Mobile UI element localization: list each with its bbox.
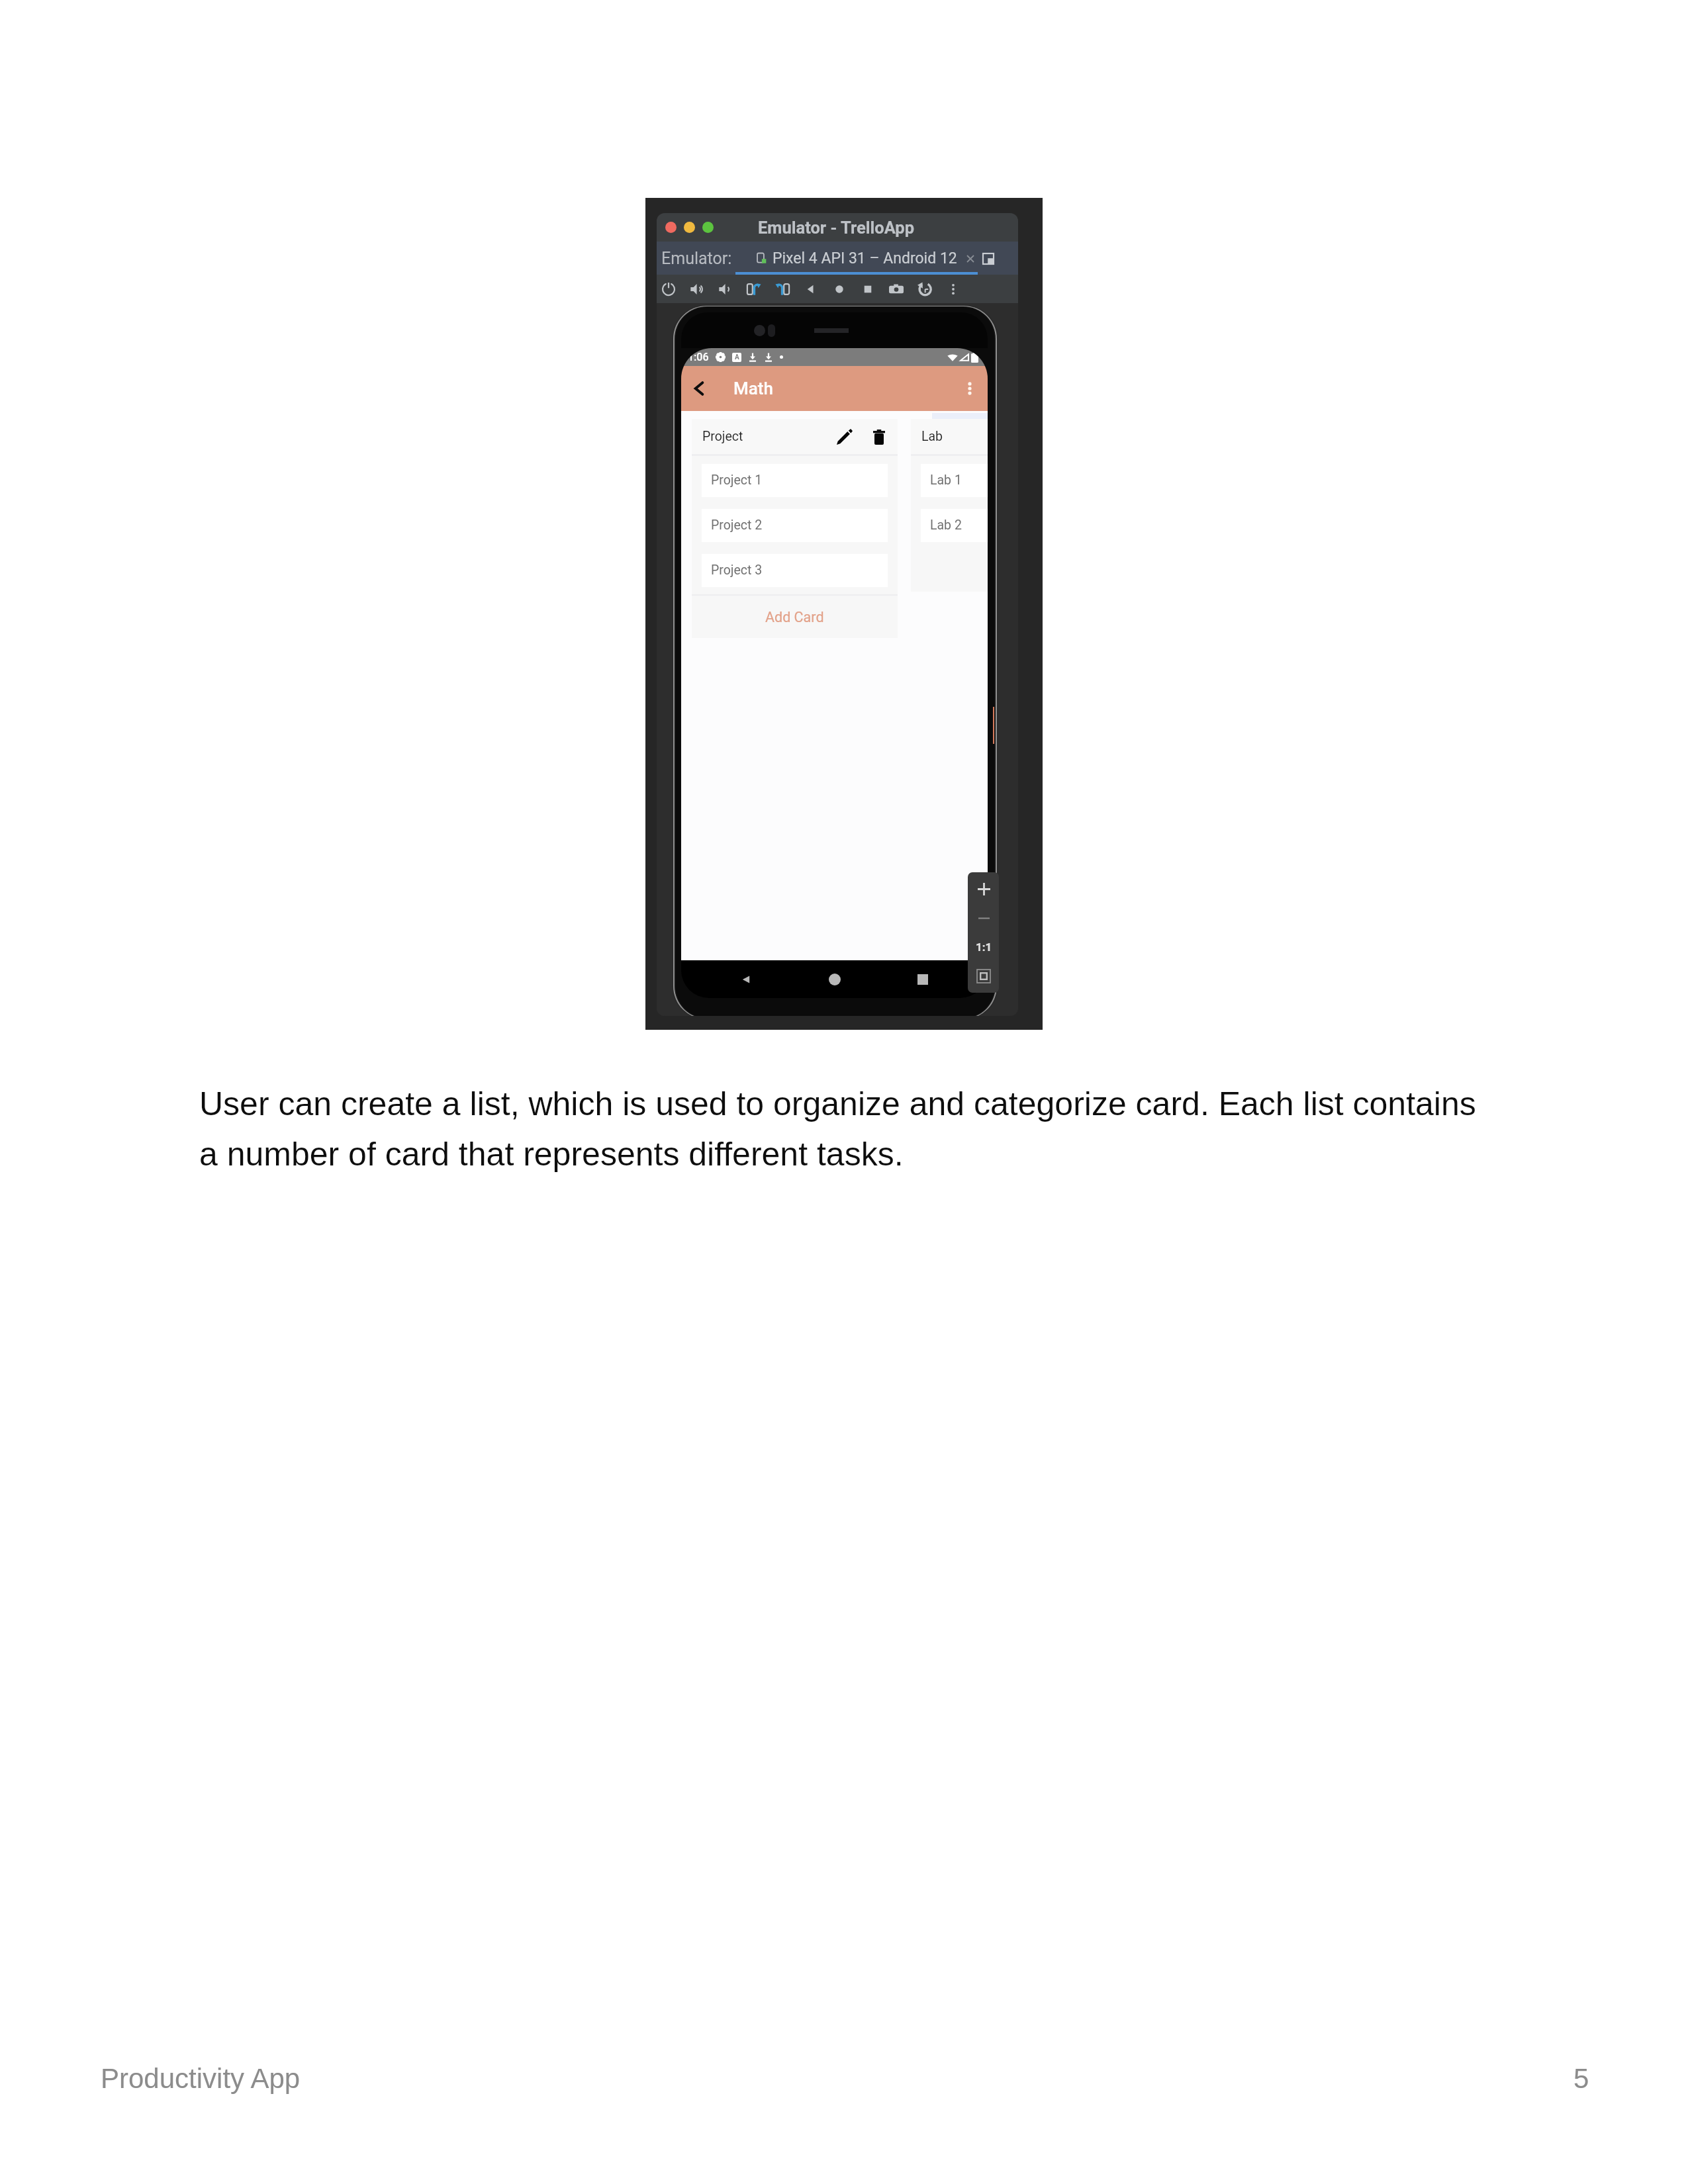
button[interactable]: Maximise window: [702, 222, 714, 233]
staticText: 1:1: [976, 940, 992, 954]
staticText: Project 3: [711, 563, 763, 578]
staticText: Pixel 4 API 31 – Android 12: [773, 250, 957, 267]
staticText: Emulator - TrelloApp: [758, 218, 915, 238]
button[interactable]: Detach: [982, 252, 995, 265]
staticText: Math: [733, 379, 773, 398]
button[interactable]: Delete list: [868, 426, 890, 447]
button[interactable]: Volume up: [689, 281, 705, 297]
button[interactable]: Project 2: [702, 509, 888, 542]
button[interactable]: Actual size: [974, 937, 994, 957]
button[interactable]: Screenshot: [888, 281, 904, 297]
button[interactable]: Record: [917, 281, 933, 297]
button[interactable]: Home: [831, 281, 847, 297]
button[interactable]: Edit list: [834, 426, 855, 447]
button[interactable]: More: [945, 281, 961, 297]
button[interactable]: Rotate left: [746, 281, 762, 297]
staticText: Project: [702, 429, 743, 444]
button[interactable]: Fit to screen: [974, 966, 994, 986]
button[interactable]: Volume down: [718, 281, 733, 297]
button[interactable]: Zoom out: [974, 908, 994, 928]
staticText: Lab 1: [930, 473, 962, 488]
button[interactable]: Home: [823, 968, 847, 991]
button[interactable]: Project 3: [702, 554, 888, 587]
staticText: Productivity App: [101, 2063, 301, 2094]
staticText: User can create a list, which is used to…: [199, 1085, 1476, 1122]
button[interactable]: Rotate right: [774, 281, 790, 297]
staticText: Add Card: [765, 609, 824, 625]
button[interactable]: Lab 2: [921, 509, 988, 542]
button[interactable]: Lab 1: [921, 464, 988, 497]
button[interactable]: Power: [661, 281, 677, 297]
staticText: Project 2: [711, 518, 763, 533]
button[interactable]: Back: [803, 281, 819, 297]
button[interactable]: Overview: [860, 281, 876, 297]
staticText: 1:06: [688, 351, 709, 363]
staticText: a number of card that represents differe…: [199, 1136, 904, 1173]
button[interactable]: Back: [686, 376, 712, 401]
staticText: 5: [1573, 2063, 1589, 2094]
staticText: Lab 2: [930, 518, 962, 533]
staticText: Emulator:: [661, 249, 732, 268]
button[interactable]: More options: [959, 377, 981, 400]
staticText: A: [735, 353, 739, 361]
button[interactable]: Minimise window: [684, 222, 695, 233]
staticText: Lab: [921, 429, 943, 444]
button[interactable]: Close window: [665, 222, 677, 233]
staticText: Project 1: [711, 473, 763, 488]
button[interactable]: Project 1: [702, 464, 888, 497]
button[interactable]: Back: [734, 968, 758, 991]
button[interactable]: Close tab: [964, 253, 976, 265]
button[interactable]: Recent apps: [911, 968, 935, 991]
button[interactable]: Zoom in: [974, 879, 994, 899]
button[interactable]: Add Card: [692, 596, 898, 638]
